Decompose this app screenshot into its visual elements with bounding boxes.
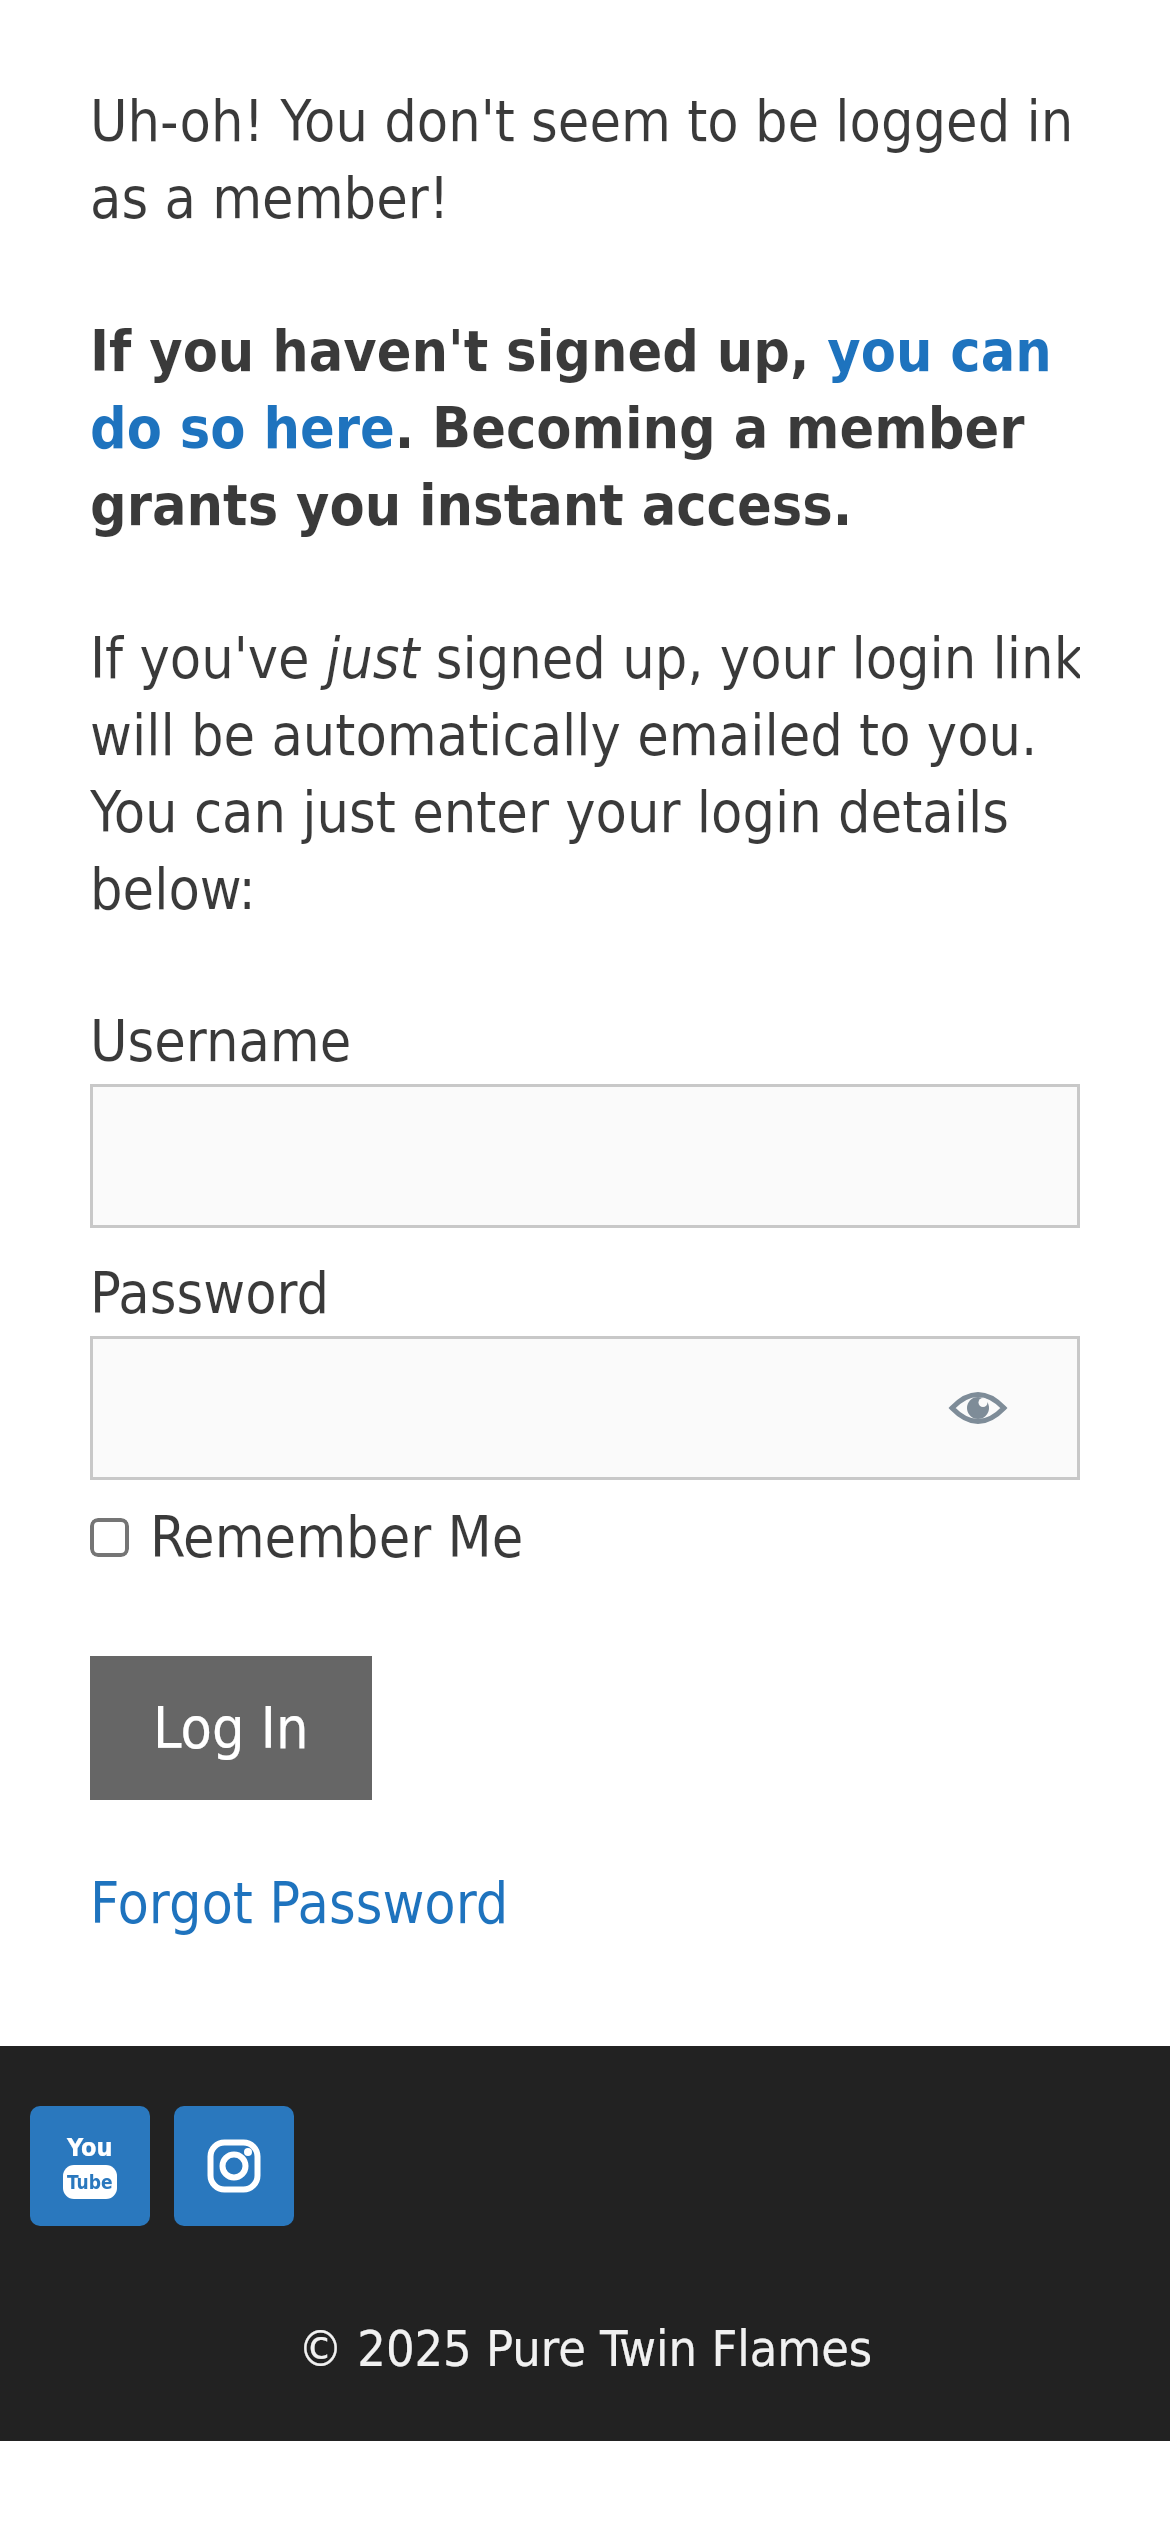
button[interactable]	[174, 2106, 294, 2226]
button[interactable]	[90, 1336, 1080, 1480]
button[interactable]: Remember Me	[90, 1504, 524, 1570]
staticText: If you've just signed up, your login lin…	[90, 625, 1080, 923]
staticText: Password	[90, 1260, 330, 1326]
staticText: Username	[90, 1008, 352, 1074]
staticText: If you haven't signed up, you can do so …	[90, 318, 1052, 539]
button[interactable]: Forgot Password	[90, 1870, 509, 1936]
button[interactable]	[90, 1084, 1080, 1228]
staticText: © 2025 Pure Twin Flames	[298, 2320, 873, 2378]
staticText: Log In	[153, 1695, 309, 1761]
button[interactable]: You	[30, 2106, 150, 2226]
button[interactable]: Log In	[90, 1656, 372, 1800]
staticText: Tube	[67, 2171, 113, 2193]
staticText: Uh-oh! You don't seem to be logged in as…	[90, 88, 1074, 232]
staticText: You	[67, 2133, 113, 2162]
staticText: Remember Me	[150, 1504, 524, 1570]
